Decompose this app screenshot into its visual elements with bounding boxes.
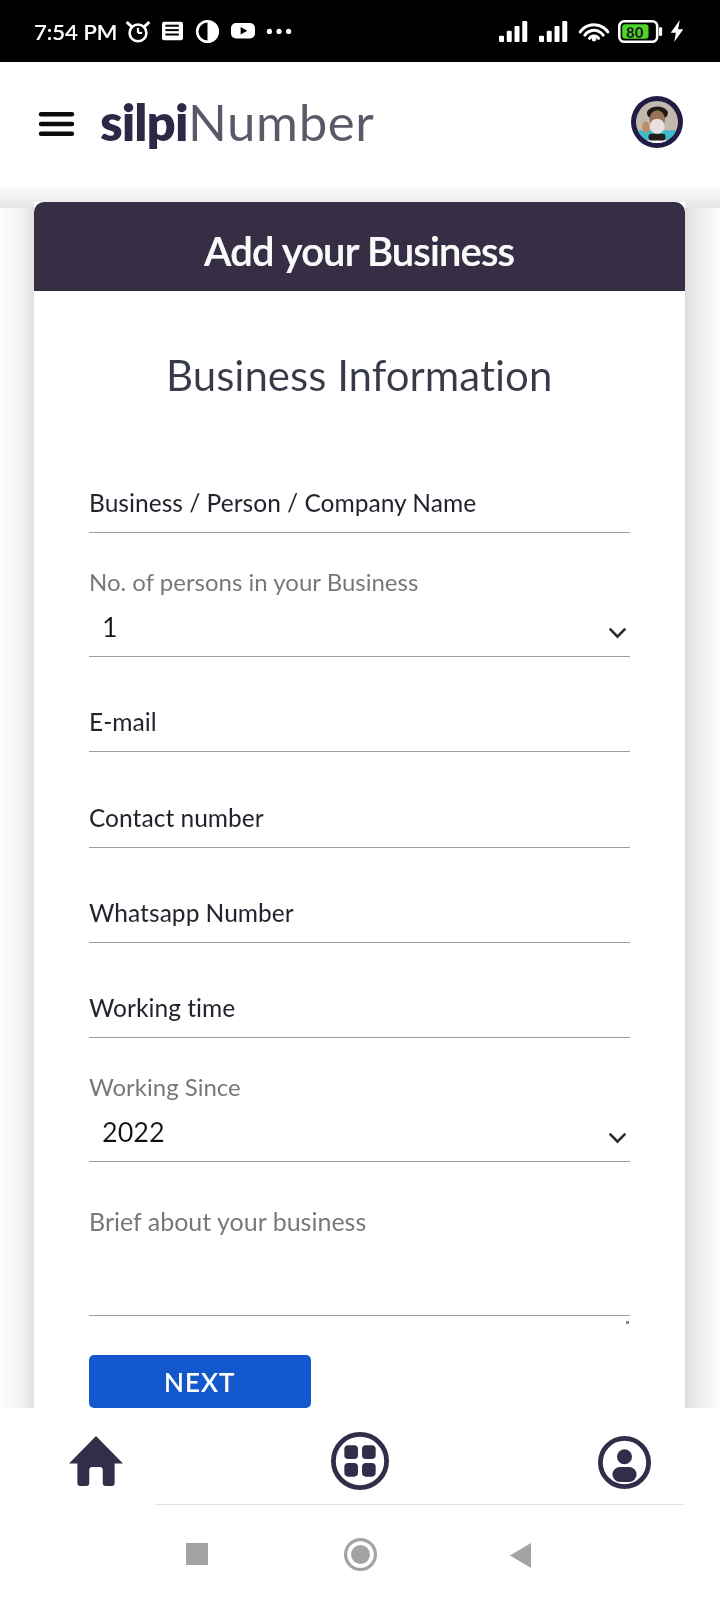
staticText: 1 <box>102 610 118 642</box>
button[interactable]: Categories <box>274 1408 446 1504</box>
button[interactable]: E-mail <box>89 707 630 752</box>
staticText: NEXT <box>164 1366 236 1397</box>
button[interactable]: Home <box>10 1408 182 1504</box>
staticText: Number <box>188 91 375 152</box>
button[interactable]: Home <box>297 1504 423 1600</box>
staticText: 7:54 PM <box>34 18 118 44</box>
button[interactable]: No. of persons in your Business <box>89 567 630 657</box>
button[interactable]: Back <box>457 1504 583 1600</box>
button[interactable]: NEXT <box>89 1355 311 1408</box>
button[interactable]: Account <box>538 1408 710 1504</box>
button[interactable]: Whatsapp Number <box>89 898 630 943</box>
button[interactable]: Contact number <box>89 803 630 848</box>
staticText: No. of persons in your Business <box>89 567 419 596</box>
staticText: Working Since <box>89 1072 241 1101</box>
button[interactable]: Working time <box>89 993 630 1038</box>
staticText: Business Information <box>166 350 553 400</box>
staticText: 2022 <box>102 1115 165 1147</box>
staticText: Whatsapp Number <box>89 898 294 927</box>
button[interactable]: Recent apps <box>134 1504 260 1600</box>
button[interactable]: Business / Person / Company Name <box>89 488 630 533</box>
staticText: E-mail <box>89 707 157 736</box>
staticText: Business / Person / Company Name <box>89 488 477 517</box>
staticText: Working time <box>89 993 236 1022</box>
staticText: 80 <box>626 23 644 41</box>
staticText: Contact number <box>89 803 264 832</box>
staticText: Brief about your business <box>89 1206 367 1236</box>
button[interactable]: Menu <box>25 93 87 155</box>
button[interactable]: Working Since <box>89 1072 630 1162</box>
button[interactable]: Profile <box>636 101 678 143</box>
staticText: Add your Business <box>204 227 515 275</box>
staticText: silpi <box>100 91 188 152</box>
